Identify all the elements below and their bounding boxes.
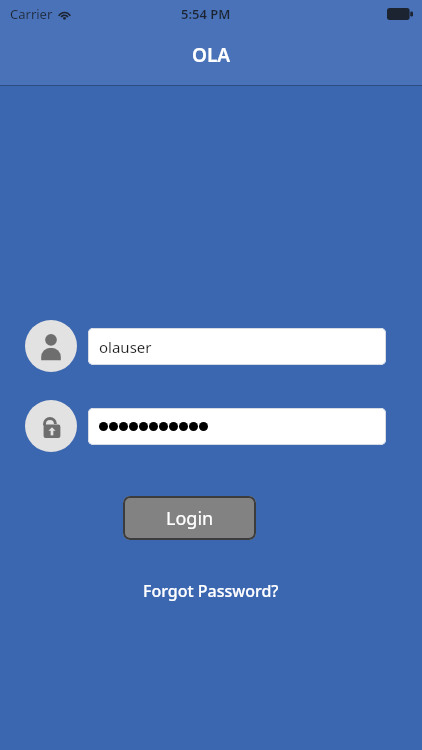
staticText: 5:54 PM xyxy=(181,5,231,23)
button[interactable]: Forgot Password? xyxy=(135,576,287,606)
button[interactable]: Login xyxy=(123,496,256,540)
staticText: Carrier xyxy=(10,5,53,23)
button[interactable]: olauser xyxy=(88,328,386,365)
staticText: Forgot Password? xyxy=(143,580,279,602)
staticText: OLA xyxy=(192,42,231,68)
button[interactable] xyxy=(88,408,386,445)
staticText: Login xyxy=(166,506,214,531)
button[interactable]: Username xyxy=(25,320,77,372)
button[interactable]: Password xyxy=(25,400,77,452)
staticText: olauser xyxy=(99,337,152,357)
